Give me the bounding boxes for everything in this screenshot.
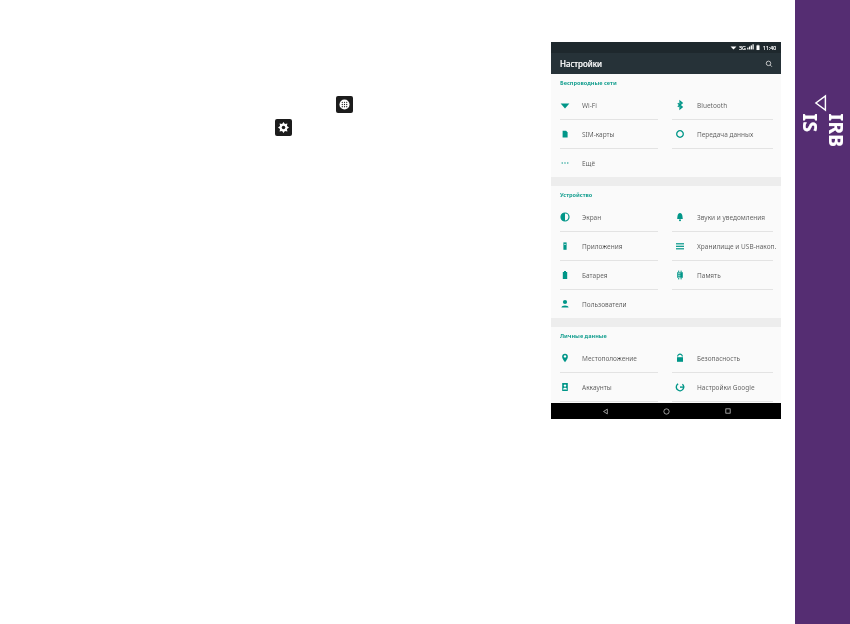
staticText: Безопасность: [697, 354, 740, 363]
button[interactable]: SIM-карты: [551, 120, 666, 148]
button[interactable]: Recent apps: [720, 403, 736, 419]
button[interactable]: Back: [597, 403, 613, 419]
staticText: Настройки: [560, 58, 602, 69]
staticText: Аккаунты: [582, 383, 612, 392]
button[interactable]: Память: [666, 261, 781, 289]
staticText: Хранилище и USB-накоп.: [697, 242, 777, 251]
button[interactable]: All apps: [336, 96, 353, 113]
button[interactable]: Батарея: [551, 261, 666, 289]
staticText: Приложения: [582, 242, 623, 251]
button[interactable]: Home: [658, 403, 674, 419]
staticText: Беспроводные сети: [560, 79, 617, 87]
staticText: Пользователи: [582, 300, 627, 309]
button[interactable]: Ещё: [551, 149, 666, 177]
button[interactable]: Приложения: [551, 232, 666, 260]
staticText: Местоположение: [582, 354, 637, 363]
staticText: Личные данные: [560, 332, 607, 340]
staticText: Передача данных: [697, 130, 754, 139]
staticText: Экран: [582, 213, 602, 222]
button[interactable]: Экран: [551, 203, 666, 231]
staticText: Bluetooth: [697, 101, 728, 110]
staticText: 3G: [739, 44, 746, 51]
staticText: Настройки Google: [697, 383, 755, 392]
button[interactable]: Хранилище и USB-накоп.: [666, 232, 781, 260]
button[interactable]: Пользователи: [551, 290, 666, 318]
button[interactable]: Аккаунты: [551, 373, 666, 401]
staticText: Устройство: [560, 191, 593, 199]
button[interactable]: Wi-Fi: [551, 91, 666, 119]
staticText: IRBIS: [796, 113, 848, 149]
staticText: 11:40: [763, 44, 777, 51]
button[interactable]: Search: [762, 57, 776, 71]
staticText: Батарея: [582, 271, 608, 280]
button[interactable]: Звуки и уведомления: [666, 203, 781, 231]
button[interactable]: Settings: [275, 119, 292, 136]
button[interactable]: Bluetooth: [666, 91, 781, 119]
staticText: Wi-Fi: [582, 101, 597, 110]
button[interactable]: Настройки Google: [666, 373, 781, 401]
button[interactable]: Передача данных: [666, 120, 781, 148]
staticText: Ещё: [582, 159, 596, 168]
staticText: Звуки и уведомления: [697, 213, 766, 222]
staticText: SIM-карты: [582, 130, 615, 139]
button[interactable]: Местоположение: [551, 344, 666, 372]
staticText: Память: [697, 271, 721, 280]
button[interactable]: Безопасность: [666, 344, 781, 372]
